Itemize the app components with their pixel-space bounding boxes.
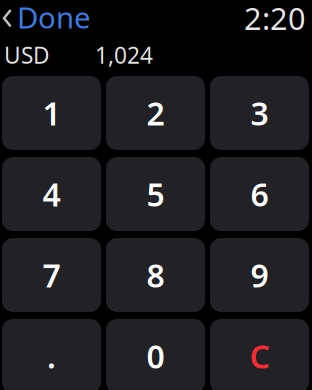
button[interactable]: Clear <box>210 319 309 390</box>
staticText: 0 <box>146 335 164 377</box>
button[interactable]: 0 <box>106 319 205 390</box>
button[interactable]: 5 <box>106 157 205 231</box>
staticText: 6 <box>250 173 268 215</box>
staticText: 4 <box>42 173 60 215</box>
staticText: 1,024 <box>95 40 153 70</box>
staticText: 9 <box>250 254 268 296</box>
staticText: USD <box>4 40 50 70</box>
button[interactable]: Decimal point <box>2 319 101 390</box>
staticText: Done <box>17 0 91 36</box>
button[interactable]: 8 <box>106 238 205 312</box>
button[interactable]: 3 <box>210 76 309 150</box>
staticText: 7 <box>42 254 60 296</box>
button[interactable]: 9 <box>210 238 309 312</box>
button[interactable]: 6 <box>210 157 309 231</box>
staticText: 5 <box>146 173 164 215</box>
staticText: 8 <box>146 254 164 296</box>
staticText: C <box>249 335 269 377</box>
staticText: . <box>47 335 56 377</box>
button[interactable]: Done <box>0 0 101 34</box>
button[interactable]: 1 <box>2 76 101 150</box>
staticText: 1 <box>42 92 60 134</box>
staticText: 3 <box>250 92 268 134</box>
button[interactable]: 7 <box>2 238 101 312</box>
button[interactable]: 2 <box>106 76 205 150</box>
staticText: 2:20 <box>244 0 306 38</box>
staticText: 2 <box>146 92 164 134</box>
button[interactable]: 4 <box>2 157 101 231</box>
